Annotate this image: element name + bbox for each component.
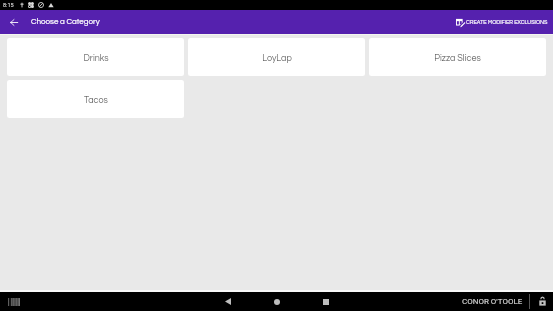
staticText: Drinks <box>83 54 109 63</box>
button[interactable]: Back <box>203 292 252 311</box>
button[interactable]: Pizza Slices <box>369 38 546 76</box>
button[interactable]: Navigate up <box>0 10 28 34</box>
button[interactable]: Home <box>252 292 301 311</box>
staticText: Tacos <box>84 96 108 105</box>
staticText: LoyLap <box>262 54 292 63</box>
button[interactable]: Tacos <box>7 80 184 118</box>
staticText: Choose a Category <box>31 17 100 25</box>
staticText: 8:15 <box>3 2 14 8</box>
staticText: Pizza Slices <box>434 54 481 63</box>
staticText: CONOR O'TOOLE <box>462 297 523 306</box>
staticText: CREATE MODIFIER EXCLUSIONS <box>466 19 548 25</box>
button[interactable]: LoyLap <box>188 38 365 76</box>
button[interactable]: Recent apps <box>301 292 350 311</box>
button[interactable]: Lock <box>535 292 549 311</box>
button[interactable]: CREATE MODIFIER EXCLUSIONS <box>452 10 553 34</box>
button[interactable]: Switch input method <box>0 292 28 311</box>
button[interactable]: Drinks <box>7 38 184 76</box>
